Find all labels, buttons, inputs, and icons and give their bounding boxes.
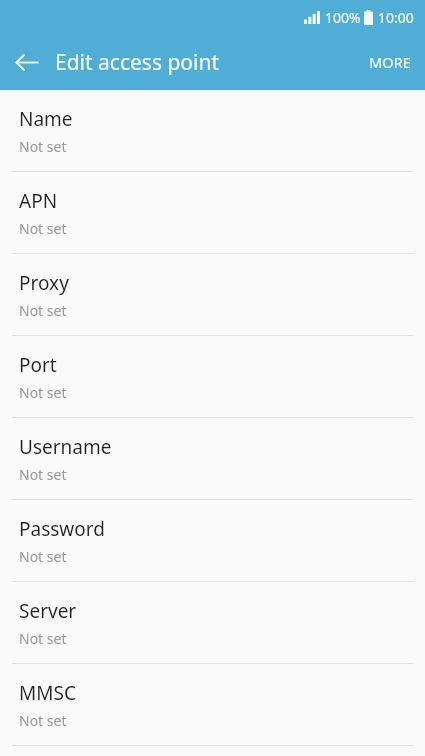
staticText: 10:00 [378,8,414,27]
staticText: Not set [19,711,67,730]
staticText: MORE [369,52,411,72]
button[interactable]: Name [0,90,425,171]
staticText: Proxy [19,270,69,296]
staticText: Port [19,352,57,378]
button[interactable]: Back [0,34,55,90]
staticText: Username [19,434,112,460]
staticText: 100% [325,8,361,27]
staticText: Server [19,598,77,624]
button[interactable]: Port [0,336,425,417]
staticText: APN [19,188,58,214]
button[interactable]: Username [0,418,425,499]
staticText: Not set [19,465,67,484]
staticText: Not set [19,547,67,566]
staticText: Password [19,516,105,542]
button[interactable]: Proxy [0,254,425,335]
button[interactable]: MORE [355,34,425,90]
staticText: Name [19,106,73,132]
staticText: Edit access point [55,48,220,77]
staticText: MMSC [19,680,76,706]
button[interactable]: Password [0,500,425,581]
staticText: Not set [19,383,67,402]
staticText: Not set [19,219,67,238]
staticText: Not set [19,629,67,648]
button[interactable]: MMSC [0,664,425,745]
button[interactable]: APN [0,172,425,253]
staticText: Not set [19,137,67,156]
button[interactable]: Server [0,582,425,663]
staticText: Not set [19,301,67,320]
